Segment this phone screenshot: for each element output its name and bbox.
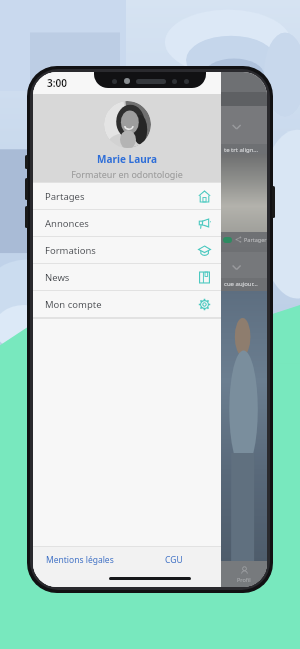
staticText: Formateur en odontologie <box>71 168 183 180</box>
staticText: Annonces <box>45 217 89 230</box>
staticText: Formations <box>45 244 96 257</box>
staticText: Marie Laura <box>97 152 157 166</box>
other: Partages <box>198 190 211 203</box>
button[interactable]: Mentions légales <box>33 547 127 573</box>
button[interactable]: CGU <box>127 547 221 573</box>
staticText: cue aujour… <box>224 280 258 288</box>
button[interactable]: Profil <box>221 561 267 587</box>
button[interactable]: Mon compte <box>33 291 221 318</box>
staticText: Profil <box>237 576 251 583</box>
other: Formations <box>198 244 211 257</box>
button[interactable]: Annonces <box>33 210 221 237</box>
staticText: 3:00 <box>47 76 67 90</box>
other: Annonces <box>198 217 211 230</box>
staticText: CGU <box>165 554 183 566</box>
staticText: News <box>45 271 70 284</box>
button[interactable]: Formations <box>33 237 221 264</box>
staticText: te trt align… <box>224 146 259 154</box>
staticText: Mentions légales <box>46 554 114 566</box>
staticText: Mon compte <box>45 298 102 311</box>
other: News <box>198 271 211 284</box>
other: Mon compte <box>198 298 211 311</box>
staticText: Partager <box>244 236 267 243</box>
button[interactable]: News <box>33 264 221 291</box>
button[interactable]: Partages <box>33 183 221 210</box>
staticText: Partages <box>45 190 85 203</box>
